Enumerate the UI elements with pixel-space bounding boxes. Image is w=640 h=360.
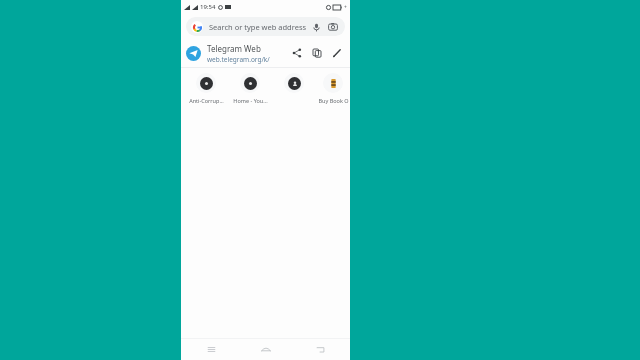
button[interactable]: Back: [310, 339, 330, 359]
button[interactable]: Home - You...: [228, 73, 272, 104]
button[interactable]: Buy Book O: [316, 73, 350, 104]
staticText: +: [344, 4, 347, 11]
staticText: Telegram Web: [207, 43, 261, 54]
button[interactable]: Anti-Corrup...: [184, 73, 228, 104]
staticText: Home - You...: [233, 97, 268, 104]
button[interactable]: Search with camera: [326, 20, 340, 34]
staticText: Anti-Corrup...: [189, 97, 224, 104]
staticText: Buy Book O: [318, 97, 349, 104]
staticText: Search or type web address: [209, 22, 307, 32]
button[interactable]: Home: [256, 339, 276, 359]
button[interactable]: [272, 73, 316, 97]
staticText: 19:54: [200, 3, 216, 11]
button[interactable]: Telegram Web: [181, 39, 350, 67]
staticText: web.telegram.org/k/: [207, 55, 270, 64]
button[interactable]: Edit: [329, 45, 345, 61]
button[interactable]: Share: [289, 45, 305, 61]
button[interactable]: Copy link: [309, 45, 325, 61]
button[interactable]: Recent apps: [201, 339, 221, 359]
button[interactable]: Search or type web address: [186, 17, 345, 36]
button[interactable]: Voice search: [309, 20, 323, 34]
